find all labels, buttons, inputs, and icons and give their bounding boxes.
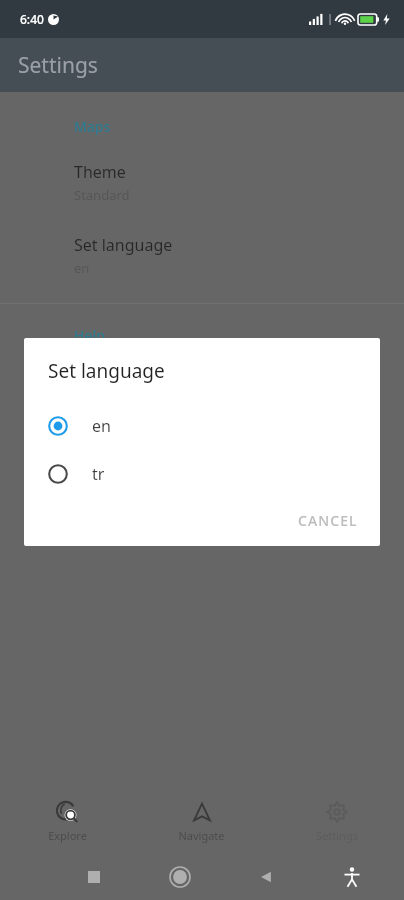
button[interactable]: Set language <box>0 232 404 279</box>
staticText: Navigate <box>178 828 225 843</box>
button[interactable]: Back <box>223 854 309 900</box>
staticText: en <box>74 259 90 277</box>
button[interactable]: Accessibility <box>309 854 395 900</box>
button[interactable]: tr <box>24 450 380 498</box>
staticText: Settings <box>18 51 98 80</box>
staticText: en <box>92 415 111 437</box>
button[interactable]: en <box>24 402 380 450</box>
staticText: Explore <box>48 828 87 843</box>
staticText: 6:40 <box>20 11 44 27</box>
staticText: Maps <box>74 117 111 136</box>
staticText: Set language <box>48 358 165 384</box>
staticText: Standard <box>74 186 130 204</box>
staticText: Theme <box>74 161 126 183</box>
button[interactable]: CANCEL <box>276 501 380 540</box>
staticText: Set language <box>74 234 173 256</box>
button[interactable]: Home <box>137 854 223 900</box>
button[interactable]: Navigate <box>134 790 269 854</box>
staticText: CANCEL <box>298 511 358 530</box>
staticText: tr <box>92 463 105 485</box>
button[interactable]: Theme <box>0 159 404 206</box>
button[interactable]: Explore <box>0 790 134 854</box>
button[interactable]: Recent apps <box>51 854 137 900</box>
staticText: Help <box>74 326 105 345</box>
